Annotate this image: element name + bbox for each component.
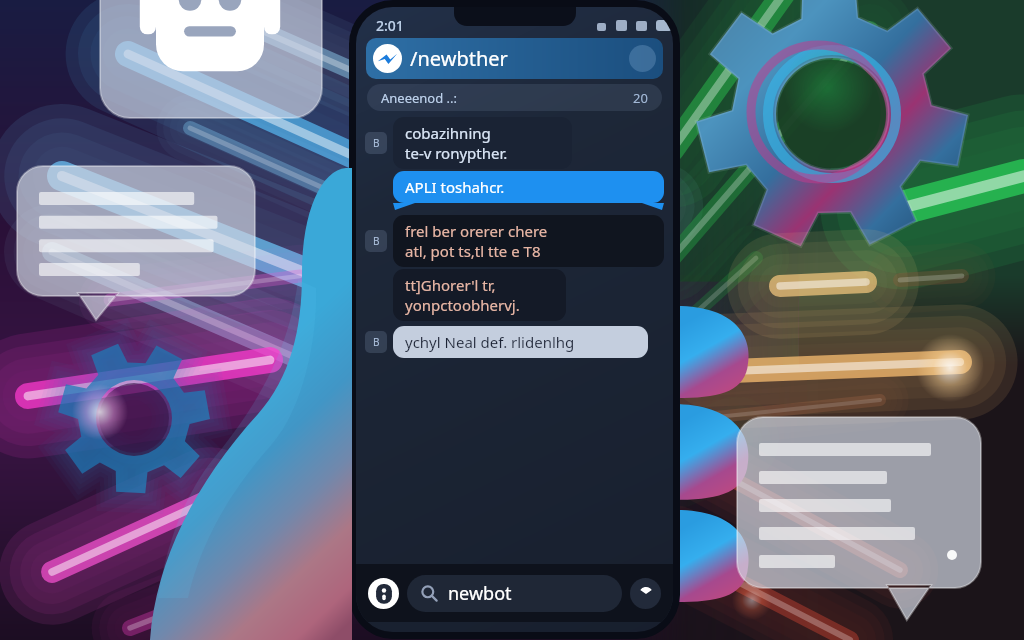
- button[interactable]: Profile: [629, 45, 656, 72]
- button[interactable]: ychyl Neal def. rlidenlhg: [393, 326, 648, 358]
- button[interactable]: APLI toshahcr.: [393, 171, 664, 203]
- staticText: B: [373, 335, 380, 349]
- staticText: atl, pot ts,tl tte e T8: [405, 241, 541, 261]
- staticText: B: [373, 136, 380, 150]
- staticText: /newbther: [410, 45, 508, 72]
- staticText: B: [373, 234, 380, 248]
- staticText: 20: [633, 89, 648, 107]
- button[interactable]: Bot: [368, 578, 399, 609]
- staticText: 2:01: [376, 16, 404, 34]
- staticText: APLI toshahcr.: [405, 177, 505, 197]
- button[interactable]: Aneeenod ..:: [367, 84, 662, 111]
- button[interactable]: tt]Ghorer'l tr,: [393, 269, 566, 321]
- button[interactable]: cobazihning: [393, 117, 572, 169]
- staticText: newbot: [448, 581, 512, 606]
- button[interactable]: newbot: [407, 575, 622, 612]
- staticText: yonpctoobhervj.: [405, 295, 520, 315]
- staticText: ychyl Neal def. rlidenlhg: [405, 332, 575, 352]
- staticText: te-v ronypther.: [405, 143, 508, 163]
- staticText: frel ber orerer chere: [405, 221, 548, 241]
- staticText: cobazihning: [405, 123, 491, 143]
- staticText: tt]Ghorer'l tr,: [405, 275, 496, 295]
- button[interactable]: frel ber orerer chere: [393, 215, 664, 267]
- button[interactable]: /newbther: [366, 38, 663, 79]
- staticText: Aneeenod ..:: [381, 89, 458, 107]
- button[interactable]: Menu: [630, 578, 661, 609]
